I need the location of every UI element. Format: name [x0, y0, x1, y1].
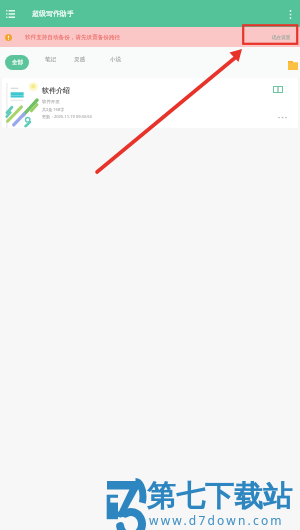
staticText: 灵感	[74, 56, 85, 63]
button[interactable]: 软件介绍	[2, 78, 298, 128]
staticText: www.d7down.com	[149, 512, 284, 528]
staticText: 更新：2025-11-19 09:33:53	[42, 114, 92, 119]
button[interactable]: Menu	[4, 7, 17, 20]
button[interactable]: Open book	[270, 83, 286, 96]
button[interactable]: More	[272, 111, 292, 123]
button[interactable]: Folder	[288, 61, 298, 70]
staticText: 软件开发	[42, 99, 60, 105]
staticText: 软件支持自动备份，请先设置备份路径	[25, 34, 121, 41]
staticText: 现在设置	[272, 35, 291, 41]
staticText: 第七下载站	[147, 478, 292, 515]
staticText: 软件介绍	[42, 86, 70, 95]
staticText: 超级写作助手	[32, 9, 74, 18]
button[interactable]: 现在设置	[272, 35, 291, 41]
button[interactable]: 灵感	[74, 56, 85, 63]
staticText: 笔记	[45, 56, 56, 63]
button[interactable]: More options	[284, 8, 296, 20]
staticText: 全部	[12, 59, 23, 66]
staticText: 共2条 158字	[42, 107, 65, 112]
button[interactable]: 小说	[110, 56, 121, 63]
other: Logo	[102, 475, 154, 530]
staticText: 小说	[110, 56, 121, 63]
button[interactable]: 笔记	[45, 56, 56, 63]
button[interactable]: 全部	[5, 55, 29, 70]
